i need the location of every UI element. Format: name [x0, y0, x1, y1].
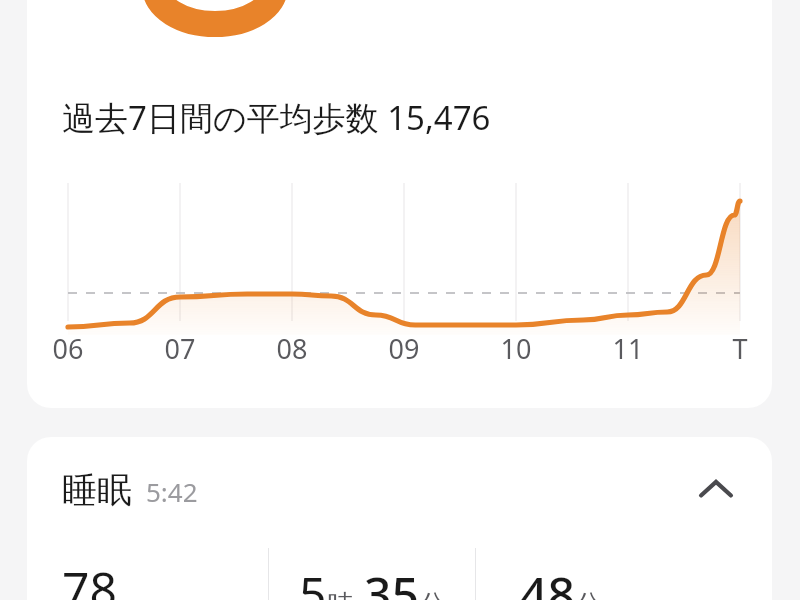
staticText: 08 — [262, 330, 322, 367]
staticText: 11 — [598, 330, 658, 367]
staticText: 睡眠 — [62, 468, 132, 512]
staticText: 78 — [62, 556, 117, 600]
staticText: T — [710, 330, 770, 367]
staticText: 分 — [575, 588, 602, 600]
button[interactable]: 睡眠 — [27, 437, 772, 542]
button[interactable]: 78 — [27, 542, 268, 600]
staticText: 5 — [299, 561, 327, 600]
button[interactable]: 48 — [476, 556, 676, 600]
staticText: 35 — [364, 561, 419, 600]
staticText: 時 — [327, 588, 354, 600]
staticText: 06 — [38, 330, 98, 367]
button[interactable]: 折りたたむ — [692, 466, 740, 514]
staticText: 48 — [520, 561, 575, 600]
staticText: 07 — [150, 330, 210, 367]
button[interactable]: 過去7日間の平均歩数 15,476 — [27, 0, 772, 408]
staticText: 10 — [486, 330, 546, 367]
staticText: 分 — [419, 588, 446, 600]
staticText: 過去7日間の平均歩数 15,476 — [62, 95, 491, 140]
button[interactable]: 5 — [269, 556, 475, 600]
staticText: 09 — [374, 330, 434, 367]
staticText: 5:42 — [146, 474, 198, 509]
